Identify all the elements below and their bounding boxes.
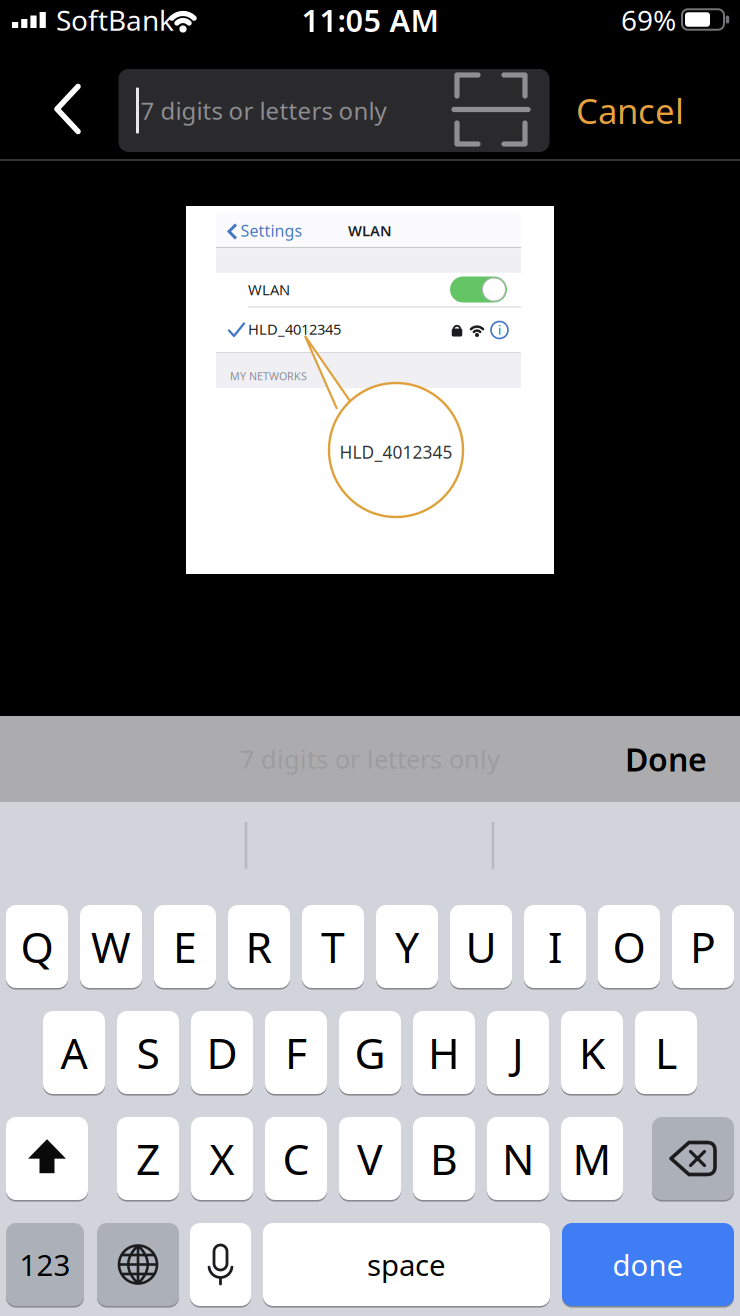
- staticText: i: [498, 322, 501, 338]
- staticText: T: [321, 918, 345, 975]
- button[interactable]: Z: [117, 1116, 179, 1201]
- staticText: 7 digits or letters only: [140, 95, 386, 126]
- button[interactable]: B: [413, 1116, 475, 1201]
- button[interactable]: J: [487, 1010, 549, 1095]
- staticText: done: [612, 1245, 683, 1284]
- staticText: K: [579, 1024, 605, 1081]
- staticText: X: [209, 1130, 234, 1187]
- button[interactable]: space: [263, 1222, 550, 1307]
- button[interactable]: T: [302, 904, 364, 989]
- staticText: E: [173, 918, 197, 975]
- button[interactable]: Done: [625, 738, 707, 780]
- staticText: A: [60, 1024, 87, 1081]
- button[interactable]: X: [191, 1116, 253, 1201]
- button[interactable]: I: [524, 904, 586, 989]
- button[interactable]: Next keyboard: [97, 1222, 179, 1307]
- staticText: Y: [395, 918, 419, 975]
- button[interactable]: Delete: [652, 1116, 734, 1201]
- button[interactable]: G: [339, 1010, 401, 1095]
- button[interactable]: F: [265, 1010, 327, 1095]
- staticText: SoftBank: [56, 1, 174, 39]
- staticText: I: [548, 918, 562, 975]
- staticText: 123: [19, 1245, 70, 1284]
- staticText: Q: [20, 918, 53, 975]
- staticText: HLD_4012345: [339, 440, 452, 463]
- staticText: space: [367, 1245, 446, 1284]
- button[interactable]: C: [265, 1116, 327, 1201]
- button[interactable]: Back: [53, 82, 87, 138]
- button[interactable]: D: [191, 1010, 253, 1095]
- staticText: W: [91, 918, 131, 975]
- staticText: Done: [625, 738, 707, 780]
- button[interactable]: Y: [376, 904, 438, 989]
- button[interactable]: A: [43, 1010, 105, 1095]
- staticText: 7 digits or letters only: [240, 742, 500, 776]
- staticText: S: [136, 1024, 159, 1081]
- button[interactable]: Code entry field: [118, 69, 549, 152]
- staticText: L: [655, 1024, 677, 1081]
- button[interactable]: Cancel: [576, 87, 684, 133]
- staticText: M: [572, 1130, 611, 1187]
- staticText: Cancel: [576, 87, 684, 133]
- staticText: 69%: [621, 1, 676, 39]
- staticText: D: [206, 1024, 237, 1081]
- staticText: G: [354, 1024, 385, 1081]
- button[interactable]: L: [635, 1010, 697, 1095]
- staticText: H: [428, 1024, 460, 1081]
- staticText: U: [465, 918, 496, 975]
- staticText: WLAN: [248, 280, 290, 299]
- staticText: O: [612, 918, 645, 975]
- button[interactable]: P: [672, 904, 734, 989]
- button[interactable]: S: [117, 1010, 179, 1095]
- button[interactable]: V: [339, 1116, 401, 1201]
- button[interactable]: O: [598, 904, 660, 989]
- button[interactable]: W: [80, 904, 142, 989]
- button[interactable]: K: [561, 1010, 623, 1095]
- button[interactable]: M: [561, 1116, 623, 1201]
- staticText: B: [430, 1130, 458, 1187]
- button[interactable]: Numbers: [6, 1222, 84, 1307]
- staticText: Settings: [240, 220, 302, 241]
- staticText: J: [512, 1024, 524, 1081]
- button[interactable]: E: [154, 904, 216, 989]
- button[interactable]: Shift: [6, 1116, 88, 1201]
- staticText: 11:05 AM: [301, 0, 438, 40]
- button[interactable]: H: [413, 1010, 475, 1095]
- button[interactable]: Scan code: [452, 72, 530, 147]
- staticText: Z: [136, 1130, 160, 1187]
- staticText: MY NETWORKS: [230, 369, 307, 383]
- button[interactable]: U: [450, 904, 512, 989]
- button[interactable]: done: [562, 1222, 734, 1307]
- button[interactable]: Dictation: [190, 1222, 251, 1307]
- staticText: WLAN: [348, 221, 392, 240]
- staticText: F: [285, 1024, 307, 1081]
- staticText: C: [282, 1130, 309, 1187]
- button[interactable]: R: [228, 904, 290, 989]
- staticText: R: [245, 918, 272, 975]
- staticText: P: [690, 918, 716, 975]
- staticText: HLD_4012345: [248, 319, 341, 339]
- staticText: V: [357, 1130, 383, 1187]
- staticText: N: [502, 1130, 534, 1187]
- button[interactable]: N: [487, 1116, 549, 1201]
- button[interactable]: Q: [6, 904, 68, 989]
